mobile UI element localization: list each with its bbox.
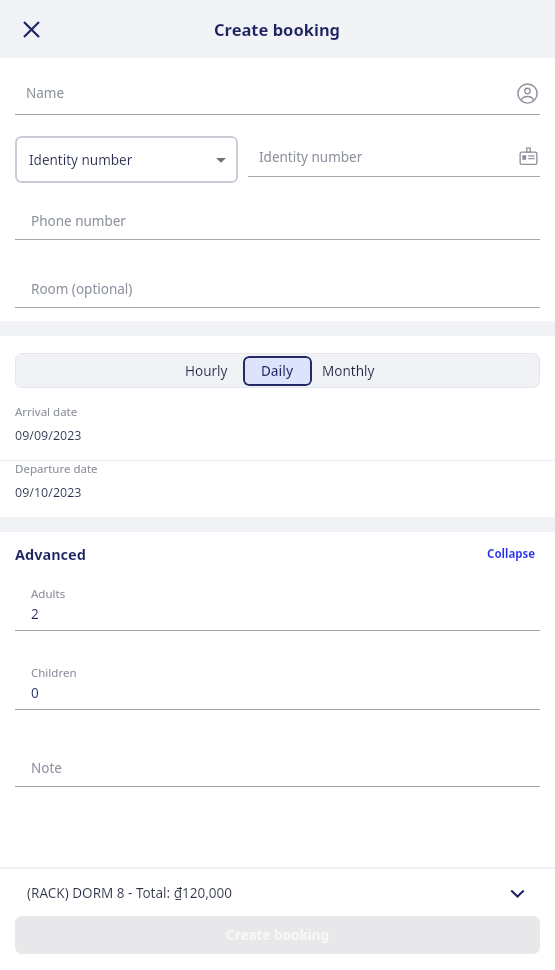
staticText: 2 [31, 605, 39, 623]
button[interactable]: Identity number [15, 136, 238, 183]
staticText: Create booking [214, 18, 341, 40]
staticText: Daily [261, 362, 294, 380]
staticText: Identity number [29, 151, 216, 169]
other: Scan ID [516, 145, 540, 169]
staticText: Room (optional) [31, 280, 133, 298]
staticText: 09/09/2023 [15, 427, 82, 444]
button[interactable]: Arrival date [0, 404, 555, 460]
button[interactable]: Daily [243, 356, 312, 386]
other: Select contact [514, 80, 540, 106]
staticText: Name [26, 84, 514, 102]
button[interactable]: Close [14, 12, 48, 46]
staticText: Note [31, 759, 62, 777]
button[interactable]: Note [15, 757, 540, 787]
staticText: Monthly [322, 362, 375, 380]
staticText: Advanced [15, 544, 483, 564]
button[interactable]: Phone number [15, 210, 540, 240]
button[interactable]: Adults [15, 586, 540, 631]
button[interactable]: Hourly [170, 356, 243, 386]
staticText: Children [31, 665, 77, 681]
button[interactable]: Name [15, 78, 540, 115]
button[interactable]: (RACK) DORM 8 - Total: ₫120,000 [0, 882, 555, 904]
staticText: Arrival date [15, 404, 78, 420]
staticText: Phone number [31, 212, 126, 230]
staticText: 0 [31, 684, 39, 702]
staticText: Departure date [15, 461, 98, 477]
other: Expand details [506, 882, 528, 904]
button[interactable]: Collapse [483, 542, 540, 566]
button[interactable]: Monthly [312, 356, 385, 386]
staticText: Hourly [185, 362, 228, 380]
staticText: (RACK) DORM 8 - Total: ₫120,000 [27, 884, 506, 902]
staticText: Create booking [226, 926, 330, 944]
button[interactable]: Children [15, 665, 540, 710]
button[interactable]: Departure date [0, 461, 555, 517]
staticText: Identity number [259, 148, 516, 166]
staticText: 09/10/2023 [15, 484, 82, 501]
button[interactable]: Room (optional) [15, 278, 540, 308]
staticText: Adults [31, 586, 66, 602]
button[interactable]: Identity number [248, 143, 540, 177]
staticText: Collapse [487, 546, 536, 562]
